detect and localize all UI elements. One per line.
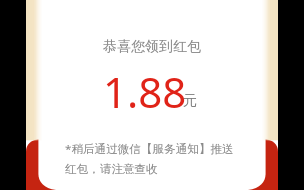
staticText: 元 xyxy=(183,92,197,110)
staticText: 恭喜您领到红包 xyxy=(103,38,201,56)
staticText: 1.88 xyxy=(103,63,187,120)
staticText: *稍后通过微信【服务通知】推送 红包，请注意查收 xyxy=(65,141,243,176)
